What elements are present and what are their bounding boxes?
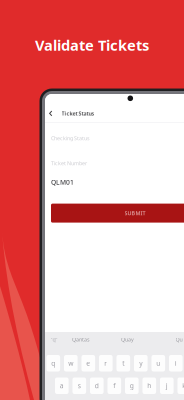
staticText: h (147, 381, 151, 390)
staticText: Quay (121, 336, 134, 343)
staticText: r (104, 359, 107, 368)
staticText: d (95, 381, 99, 390)
staticText: Ticket Number (51, 160, 87, 167)
staticText: i (175, 359, 177, 368)
staticText: u (156, 359, 160, 368)
staticText: y (139, 359, 142, 368)
button[interactable]: SUBMIT (51, 204, 184, 223)
staticText: Ticket Status (61, 110, 94, 117)
staticText: “q” (50, 336, 57, 343)
staticText: g (130, 381, 134, 390)
staticText: t (122, 359, 124, 368)
staticText: j (166, 381, 168, 390)
staticText: s (78, 381, 81, 390)
staticText: e (86, 359, 90, 368)
staticText: Qu (175, 336, 182, 343)
staticText: Checking Status (51, 135, 90, 142)
staticText: QLM01 (51, 178, 74, 187)
staticText: q (51, 359, 55, 368)
staticText: SUBMIT (124, 210, 145, 217)
staticText: a (60, 381, 64, 390)
staticText: k (182, 381, 184, 390)
staticText: Validate Tickets (35, 35, 149, 55)
staticText: Qantas (72, 336, 90, 343)
button[interactable]: Ticket Status (45, 108, 94, 119)
staticText: f (113, 381, 115, 390)
staticText: w (68, 359, 73, 368)
